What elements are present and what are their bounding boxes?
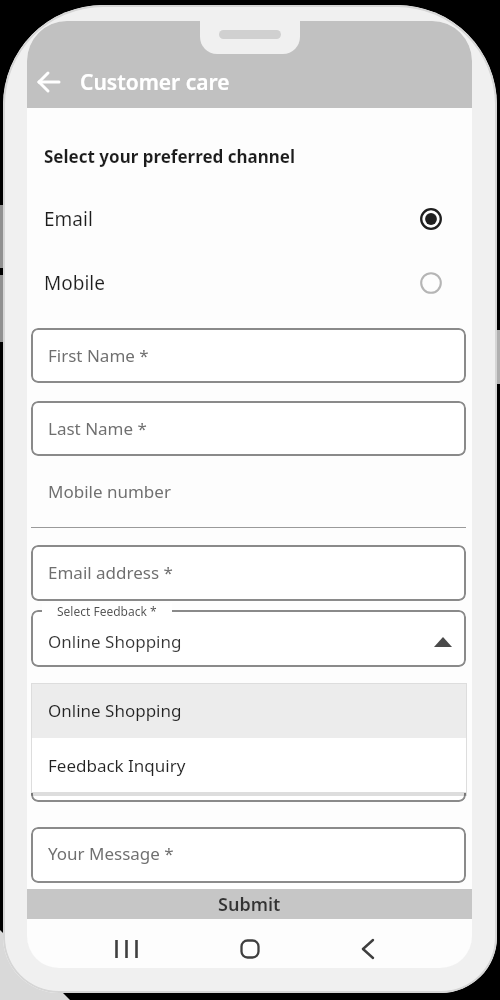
button[interactable] bbox=[33, 66, 65, 98]
button[interactable] bbox=[31, 328, 466, 383]
button[interactable]: Submit bbox=[27, 889, 472, 919]
button[interactable] bbox=[31, 401, 466, 456]
button[interactable] bbox=[31, 263, 468, 305]
staticText: Submit bbox=[218, 892, 281, 917]
staticText: Mobile bbox=[44, 270, 105, 296]
staticText: Customer care bbox=[80, 68, 230, 96]
button[interactable] bbox=[31, 473, 466, 528]
button[interactable] bbox=[31, 738, 467, 793]
staticText: Your Message * bbox=[48, 842, 174, 865]
button[interactable] bbox=[31, 610, 466, 667]
button[interactable] bbox=[31, 827, 466, 883]
staticText: Select Feedback * bbox=[57, 603, 157, 618]
staticText: Email address * bbox=[48, 561, 173, 584]
button[interactable] bbox=[31, 746, 466, 802]
staticText: Last Name * bbox=[48, 417, 147, 440]
button[interactable] bbox=[31, 683, 467, 738]
staticText: Email bbox=[44, 206, 93, 232]
staticText: Feedback Inquiry bbox=[48, 754, 186, 777]
staticText: First Name * bbox=[48, 344, 149, 367]
button[interactable] bbox=[31, 199, 468, 241]
button[interactable] bbox=[344, 933, 392, 965]
staticText: Mobile number bbox=[48, 480, 171, 503]
staticText: Online Shopping bbox=[48, 630, 182, 653]
button[interactable] bbox=[31, 545, 466, 601]
button[interactable] bbox=[226, 933, 274, 965]
staticText: Online Shopping bbox=[48, 699, 182, 722]
button[interactable] bbox=[103, 933, 151, 965]
staticText: Select your preferred channel bbox=[44, 145, 296, 168]
